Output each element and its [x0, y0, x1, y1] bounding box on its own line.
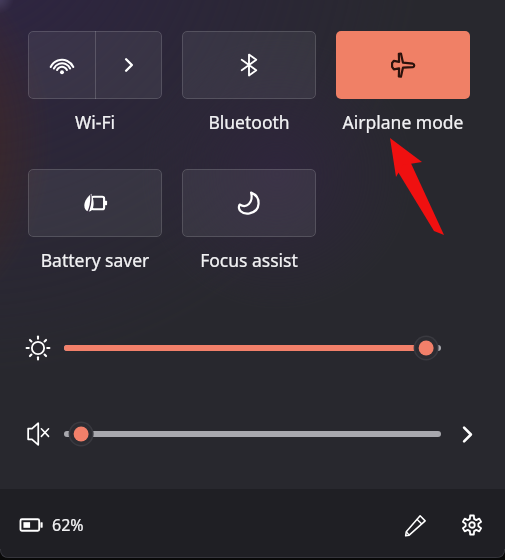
button[interactable]: Select sound output device — [447, 414, 487, 454]
button[interactable]: Airplane mode — [336, 31, 470, 99]
button[interactable]: Bluetooth — [182, 31, 316, 99]
button[interactable]: 62% — [12, 508, 92, 542]
button[interactable]: Brightness — [60, 328, 446, 368]
staticText: 62% — [52, 514, 84, 536]
staticText: Battery saver — [28, 248, 162, 272]
button[interactable]: Focus assist — [182, 169, 316, 237]
button[interactable]: Wi-Fi — [28, 31, 95, 99]
staticText: Wi-Fi — [28, 110, 162, 134]
button[interactable]: Battery saver — [28, 169, 162, 237]
staticText: Airplane mode — [336, 110, 470, 134]
button[interactable]: Settings — [452, 505, 492, 545]
staticText: Bluetooth — [182, 110, 316, 134]
button[interactable]: Wi-Fi — [28, 31, 162, 99]
button[interactable]: Edit quick settings — [395, 505, 435, 545]
button[interactable]: Volume — [60, 414, 446, 454]
button[interactable]: Manage Wi-Fi connections — [96, 31, 162, 99]
staticText: Focus assist — [182, 248, 316, 272]
